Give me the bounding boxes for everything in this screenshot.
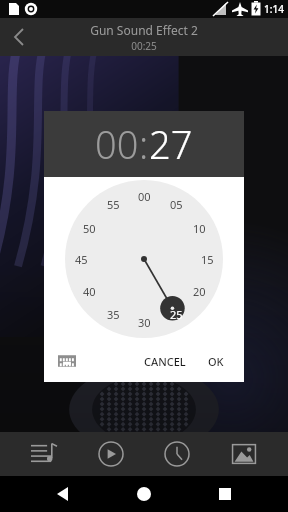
staticText: 1:14 bbox=[264, 2, 284, 16]
button[interactable]: Play bbox=[93, 436, 129, 472]
staticText: 15 bbox=[201, 252, 214, 267]
button[interactable]: Image bbox=[226, 436, 262, 472]
staticText: 25 bbox=[170, 307, 183, 322]
staticText: 10 bbox=[193, 221, 206, 236]
button[interactable]: 27 bbox=[149, 118, 193, 170]
button[interactable]: Back bbox=[48, 479, 78, 509]
button[interactable]: Recent apps bbox=[210, 479, 240, 509]
button[interactable]: CANCEL bbox=[136, 348, 194, 375]
button[interactable]: 00 bbox=[65, 180, 223, 338]
button[interactable]: Switch to keyboard input bbox=[52, 346, 82, 376]
staticText: 00:25 bbox=[131, 39, 157, 53]
staticText: 45 bbox=[75, 252, 88, 267]
staticText: 00 bbox=[138, 189, 151, 204]
button[interactable]: Playlist bbox=[26, 436, 62, 472]
staticText: CANCEL bbox=[144, 354, 186, 369]
staticText: OK bbox=[208, 354, 224, 369]
staticText: 35 bbox=[107, 307, 120, 322]
staticText: 05 bbox=[170, 197, 183, 212]
button[interactable]: Back bbox=[0, 18, 38, 56]
staticText: 40 bbox=[83, 284, 96, 299]
staticText: 30 bbox=[138, 315, 151, 330]
button[interactable]: Timer bbox=[159, 436, 195, 472]
staticText: 55 bbox=[107, 197, 120, 212]
staticText: 50 bbox=[83, 221, 96, 236]
staticText: : bbox=[139, 118, 149, 170]
button[interactable]: OK bbox=[200, 348, 232, 375]
staticText: Gun Sound Effect 2 bbox=[90, 22, 198, 38]
staticText: 20 bbox=[193, 284, 206, 299]
button[interactable]: Home bbox=[129, 479, 159, 509]
button[interactable]: 00 bbox=[95, 118, 139, 170]
